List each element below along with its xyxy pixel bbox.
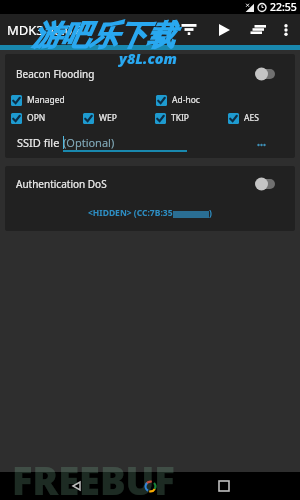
staticText: 22:55 — [270, 0, 297, 14]
button[interactable]: Recents — [210, 472, 238, 500]
button[interactable]: Log — [245, 14, 271, 45]
button[interactable]: Start — [211, 14, 237, 45]
staticText: WEP — [99, 112, 117, 124]
button[interactable]: Filter — [176, 14, 202, 45]
button[interactable]: Beacon Flooding — [5, 62, 295, 86]
staticText: Ad-hoc — [172, 94, 200, 106]
staticText: y8L.com — [119, 48, 177, 68]
staticText: <HIDDEN> (CC:7B:35 — [88, 207, 173, 219]
button[interactable]: Back — [62, 472, 90, 500]
staticText: SSID file — [17, 135, 60, 150]
staticText: ) — [209, 207, 212, 219]
button[interactable]: (Optional) — [63, 133, 187, 152]
button[interactable]: Home — [136, 472, 164, 500]
button[interactable]: More options — [274, 14, 298, 45]
staticText: Beacon Flooding — [16, 67, 95, 81]
button[interactable]: Browse files — [251, 136, 271, 154]
staticText: TKIP — [171, 112, 190, 124]
staticText: AES — [244, 112, 259, 124]
staticText: OPN — [27, 112, 46, 124]
staticText: Managed — [27, 94, 65, 106]
button[interactable]: Ad-hoc — [150, 91, 295, 109]
staticText: MDK3 v6.0.8 — [7, 21, 84, 39]
button[interactable]: OPN — [5, 109, 77, 127]
staticText: (Optional) — [63, 135, 115, 150]
staticText: Authentication DoS — [16, 177, 107, 191]
staticText: 游吧乐下载 — [32, 18, 175, 54]
button[interactable]: AES — [222, 109, 295, 127]
button[interactable]: Managed — [5, 91, 150, 109]
button[interactable]: Authentication DoS — [5, 172, 295, 196]
button[interactable]: TKIP — [149, 109, 222, 127]
button[interactable]: WEP — [77, 109, 149, 127]
staticText: FREEBUF — [12, 454, 175, 500]
